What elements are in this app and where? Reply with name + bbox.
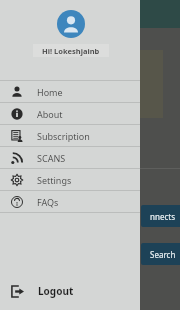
- button[interactable]: Subscription: [0, 125, 140, 146]
- button[interactable]: SCANS: [0, 147, 140, 168]
- staticText: SCANS: [37, 152, 66, 164]
- staticText: Search: [150, 249, 176, 260]
- button[interactable]: Search: [141, 243, 180, 265]
- other: Profile photo: [57, 10, 85, 38]
- staticText: nnects: [150, 211, 175, 222]
- button[interactable]: About: [0, 103, 140, 124]
- staticText: FAQs: [37, 196, 59, 208]
- staticText: Hi! Lokeshjainb: [42, 46, 100, 56]
- button[interactable]: Logout: [0, 277, 140, 305]
- staticText: About: [37, 108, 63, 120]
- staticText: Home: [37, 86, 63, 98]
- staticText: Subscription: [37, 130, 90, 142]
- button[interactable]: FAQs: [0, 191, 140, 212]
- button[interactable]: nnects: [141, 205, 180, 227]
- button[interactable]: Home: [0, 81, 140, 102]
- button[interactable]: Settings: [0, 169, 140, 190]
- staticText: Settings: [37, 174, 72, 186]
- button[interactable]: Profile photo: [0, 0, 140, 80]
- staticText: Logout: [38, 284, 74, 298]
